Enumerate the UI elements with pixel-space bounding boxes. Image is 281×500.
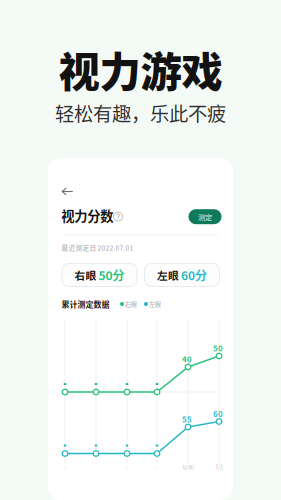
staticText: 7/1 <box>215 463 223 471</box>
staticText: 50分 <box>98 266 124 284</box>
staticText: 最近测定日 2022.07.01 <box>61 243 133 252</box>
staticText: - <box>95 463 97 471</box>
staticText: - <box>64 463 66 471</box>
staticText: 60 <box>213 408 223 419</box>
staticText: 累计测定数据 <box>61 298 109 310</box>
staticText: 右眼 <box>125 300 137 308</box>
staticText: 50 <box>213 342 223 354</box>
staticText: - <box>126 463 128 471</box>
staticText: 60分 <box>181 266 207 284</box>
staticText: 左眼 <box>149 300 161 308</box>
staticText: 6/30 <box>182 463 193 471</box>
staticText: 右眼 <box>74 267 96 283</box>
staticText: 40 <box>182 353 192 365</box>
button[interactable]: Back <box>61 187 73 195</box>
staticText: 视力分数 <box>61 206 113 225</box>
staticText: 左眼 <box>157 267 179 283</box>
staticText: 视力游戏 <box>58 39 222 99</box>
staticText: 55 <box>182 413 192 425</box>
staticText: - <box>156 463 158 471</box>
staticText: 轻松有趣，乐此不疲 <box>55 99 226 127</box>
button[interactable]: 测定 <box>188 209 221 224</box>
staticText: 测定 <box>198 211 212 222</box>
staticText: ? <box>116 212 120 221</box>
button[interactable]: 左眼 <box>144 263 219 286</box>
button[interactable]: 右眼 <box>62 263 137 286</box>
